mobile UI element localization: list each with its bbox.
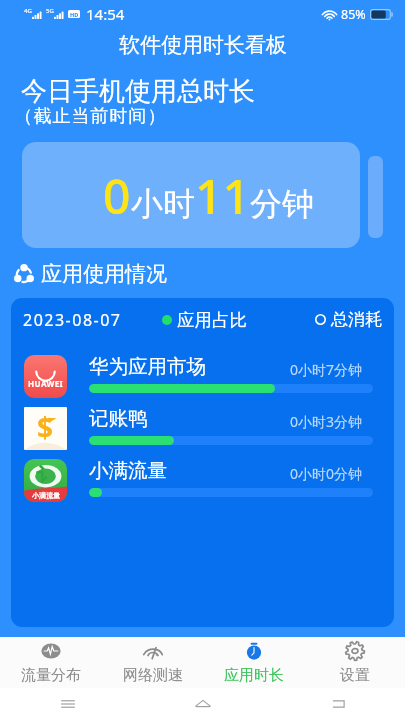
staticText: 软件使用时长看板 <box>119 32 287 58</box>
staticText: 4G <box>24 7 32 15</box>
staticText: 0小时3分钟 <box>290 412 363 431</box>
button[interactable]: Recent apps <box>0 688 135 720</box>
staticText: 华为应用市场 <box>89 354 206 379</box>
button[interactable]: 小满流量 <box>23 456 382 504</box>
staticText: 0小时7分钟 <box>290 360 363 379</box>
staticText: 85% <box>341 6 366 23</box>
staticText: 5G <box>46 7 54 15</box>
button[interactable]: 应用时长 <box>203 637 304 688</box>
staticText: 设置 <box>340 666 370 685</box>
staticText: 记账鸭 <box>89 406 148 431</box>
staticText: 小满流量 <box>32 491 60 500</box>
button[interactable]: 网络测速 <box>102 637 203 688</box>
button[interactable]: HUAWEI <box>23 352 382 400</box>
staticText: HD <box>70 11 79 18</box>
button[interactable]: $ <box>23 404 382 452</box>
staticText: HUAWEI <box>28 378 64 389</box>
staticText: 0 <box>103 163 131 228</box>
button[interactable]: 0 <box>22 142 360 248</box>
staticText: 流量分布 <box>21 666 81 685</box>
staticText: 小时 <box>131 184 195 224</box>
staticText: 应用占比 <box>177 309 247 331</box>
staticText: 小满流量 <box>89 458 167 483</box>
staticText: 讠 <box>36 463 56 488</box>
staticText: 应用使用情况 <box>41 261 167 287</box>
staticText: 14:54 <box>86 4 125 24</box>
staticText: 总消耗 <box>331 309 382 330</box>
staticText: 今日手机使用总时长 <box>21 75 255 108</box>
staticText: 分钟 <box>250 184 314 224</box>
button[interactable]: 流量分布 <box>0 637 102 688</box>
staticText: 网络测速 <box>123 666 183 685</box>
button[interactable]: Back <box>270 688 405 720</box>
staticText: 应用时长 <box>224 666 284 685</box>
staticText: $ <box>37 408 54 446</box>
staticText: （截止当前时间） <box>14 105 166 128</box>
button[interactable]: 设置 <box>304 637 405 688</box>
button[interactable]: Home <box>135 688 270 720</box>
staticText: 0小时0分钟 <box>290 464 363 483</box>
staticText: 11 <box>195 163 250 228</box>
staticText: 2023-08-07 <box>23 309 122 331</box>
